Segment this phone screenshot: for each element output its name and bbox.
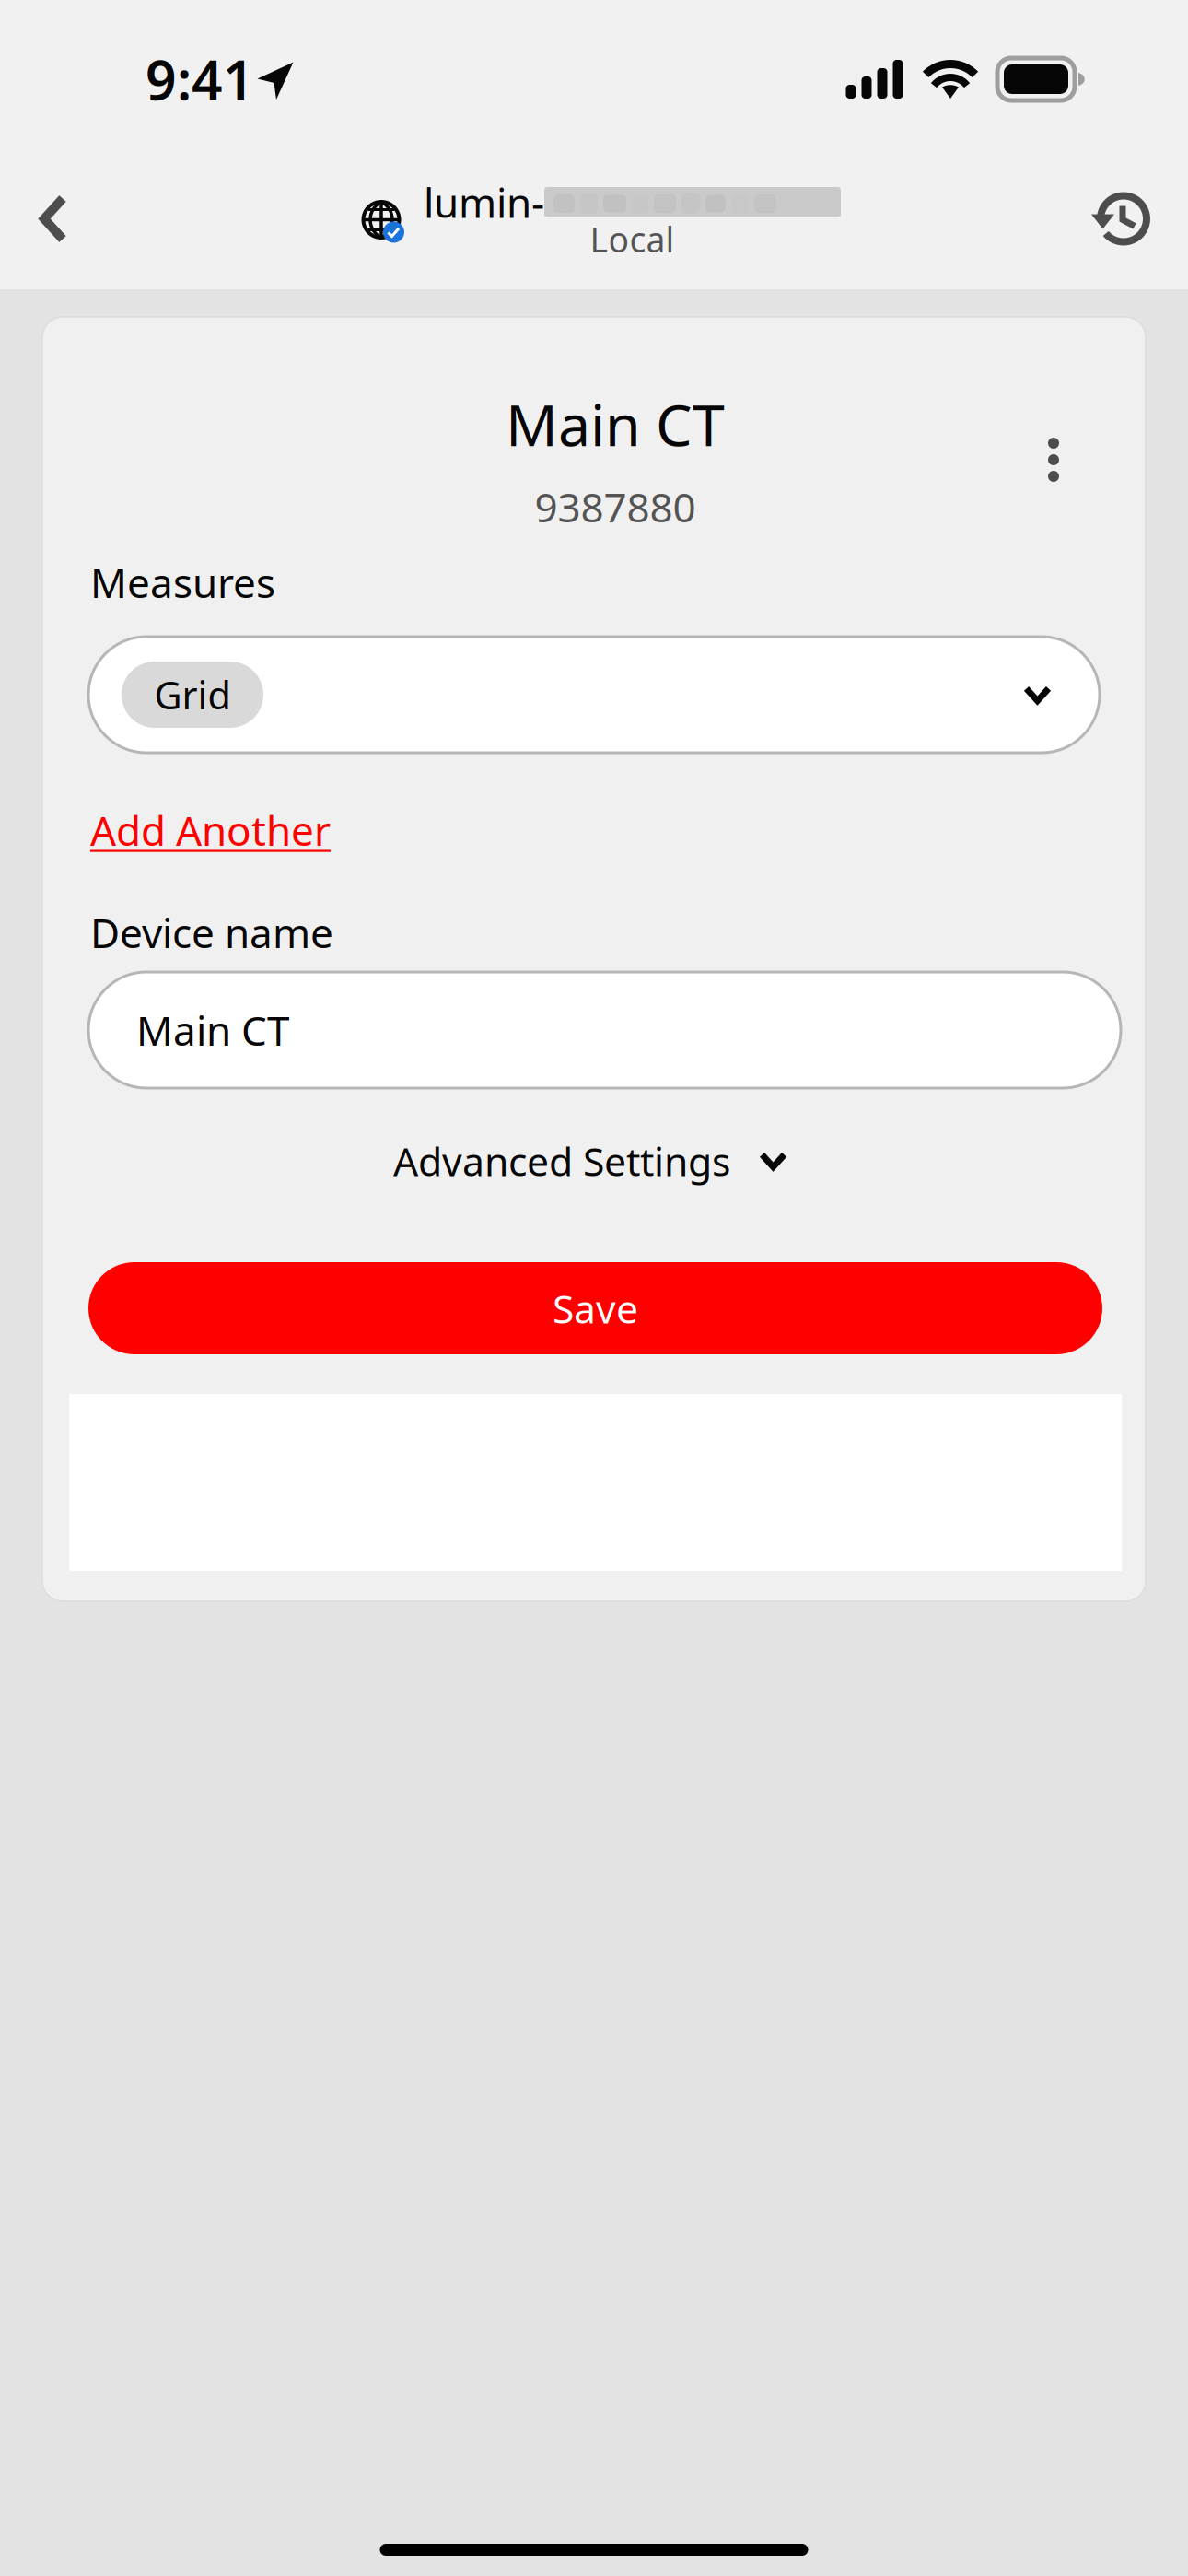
button[interactable]: Advanced Settings: [42, 1139, 1146, 1183]
staticText: Grid: [154, 669, 231, 720]
staticText: Main CT: [506, 385, 725, 462]
staticText: Main CT: [136, 1003, 289, 1057]
staticText: lumin-: [424, 175, 544, 229]
staticText: Device name: [90, 905, 333, 959]
staticText: Add Another: [90, 803, 331, 857]
staticText: Save: [553, 1282, 638, 1334]
staticText: Advanced Settings: [393, 1135, 730, 1187]
button[interactable]: Add Another: [42, 810, 1146, 850]
button[interactable]: Save: [42, 1262, 1146, 1354]
button[interactable]: Back: [2, 167, 105, 270]
staticText: 9:41: [146, 43, 254, 115]
staticText: Local: [590, 216, 675, 262]
staticText: Measures: [90, 555, 275, 609]
button[interactable]: History: [1070, 167, 1173, 270]
staticText: 9387880: [535, 480, 696, 534]
button[interactable]: More options: [1011, 414, 1096, 506]
button[interactable]: Grid: [42, 637, 1146, 753]
